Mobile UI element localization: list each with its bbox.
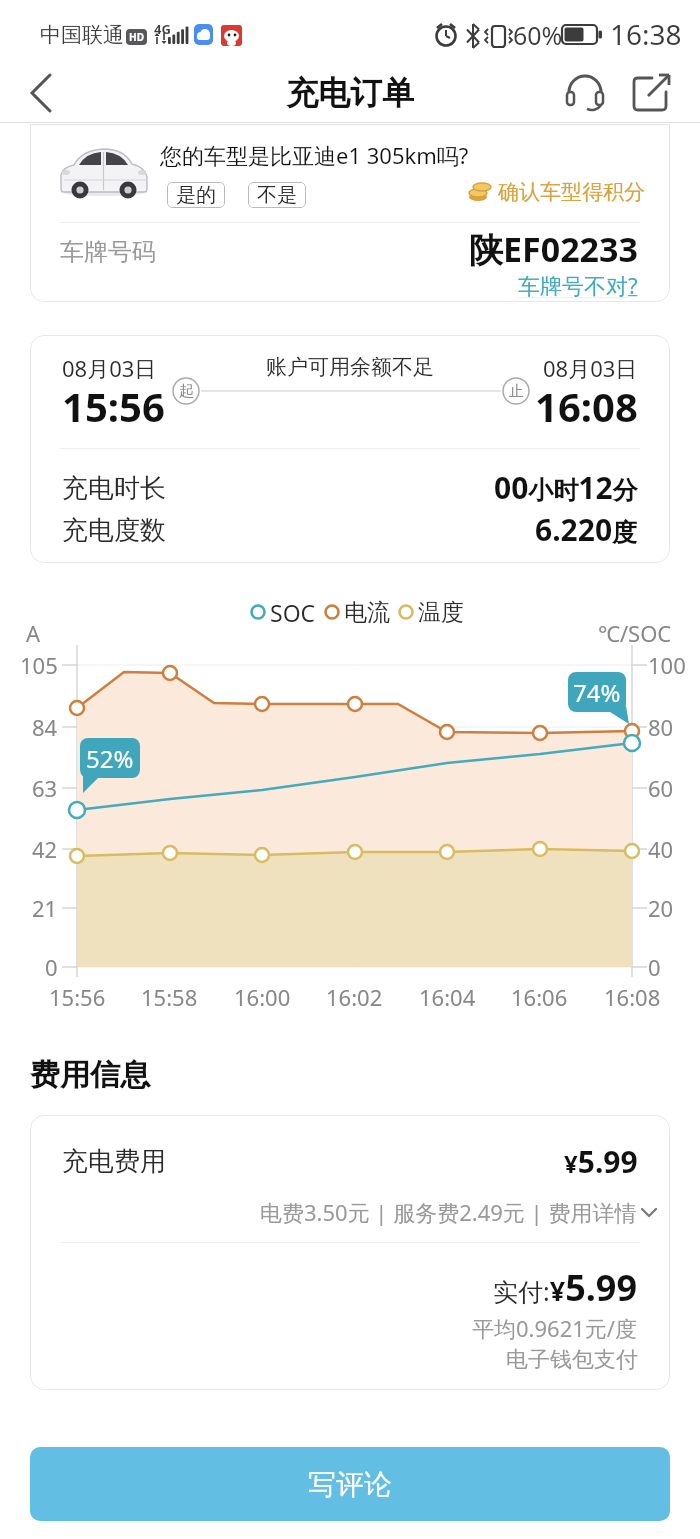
staticText: 车牌号不对? [518, 270, 638, 298]
staticText: 止 [509, 382, 524, 401]
staticText: 账户可用余额不足 [266, 354, 434, 380]
staticText: 105 [20, 650, 58, 680]
staticText: 写评论 [308, 1467, 392, 1502]
staticText: 20 [648, 893, 674, 923]
staticText: SOC [270, 597, 316, 628]
staticText: 车牌号码 [60, 237, 156, 267]
staticText: 平均0.9621元/度 [472, 1313, 638, 1343]
staticText: 74% [573, 676, 621, 708]
button[interactable] [628, 70, 678, 116]
button[interactable] [562, 70, 612, 116]
button[interactable]: 是的 [167, 182, 225, 208]
staticText: 15:56 [49, 982, 106, 1012]
staticText: 充电度数 [62, 514, 166, 547]
staticText: 60% [513, 18, 563, 52]
staticText: 16:06 [511, 982, 568, 1012]
staticText: 16:08 [604, 982, 661, 1012]
staticText: 6.220度 [535, 509, 638, 549]
staticText: 确认车型得积分 [498, 179, 645, 205]
staticText: 陕EF02233 [469, 226, 638, 272]
button[interactable]: 电费3.50元 | 服务费2.49元 | 费用详情 [260, 1195, 640, 1229]
button[interactable] [467, 175, 652, 209]
staticText: 16:38 [610, 15, 682, 53]
staticText: ¥5.99 [564, 1141, 638, 1181]
staticText: 42 [32, 834, 58, 864]
staticText: 52% [86, 742, 134, 774]
staticText: 费用信息 [30, 1056, 150, 1094]
staticText: 充电订单 [286, 73, 414, 113]
button[interactable]: 车牌号不对? [430, 270, 638, 298]
staticText: 21 [32, 893, 58, 923]
staticText: 是的 [176, 183, 216, 208]
staticText: 电子钱包支付 [506, 1346, 638, 1374]
staticText: HD [129, 30, 144, 44]
button[interactable]: 写评论 [30, 1447, 670, 1521]
staticText: 充电费用 [62, 1145, 166, 1178]
staticText: 08月03日 [543, 353, 638, 381]
staticText: 起 [179, 382, 194, 401]
button[interactable] [16, 68, 72, 118]
staticText: 80 [648, 712, 674, 742]
staticText: 15:58 [141, 982, 198, 1012]
staticText: 0 [648, 952, 661, 982]
staticText: 08月03日 [62, 353, 157, 381]
staticText: 4G [154, 20, 171, 38]
staticText: 实付:¥5.99 [493, 1263, 638, 1311]
staticText: ℃/SOC [598, 618, 672, 648]
button[interactable]: 不是 [248, 182, 306, 208]
staticText: 不是 [257, 183, 297, 208]
staticText: 温度 [418, 598, 464, 627]
staticText: 0 [45, 952, 58, 982]
staticText: A [26, 618, 41, 648]
staticText: 充电时长 [62, 472, 166, 505]
staticText: 40 [648, 834, 674, 864]
staticText: 16:08 [535, 379, 638, 429]
staticText: 60 [648, 773, 674, 803]
staticText: 中国联通 [40, 22, 124, 48]
staticText: 84 [32, 712, 58, 742]
staticText: 16:00 [234, 982, 291, 1012]
staticText: 电流 [344, 598, 390, 627]
staticText: 100 [648, 650, 686, 680]
staticText: 16:04 [419, 982, 476, 1012]
staticText: 您的车型是比亚迪e1 305km吗? [160, 140, 469, 170]
staticText: 电费3.50元 | 服务费2.49元 | 费用详情 [260, 1197, 637, 1227]
staticText: 63 [32, 773, 58, 803]
staticText: 00小时12分 [494, 467, 638, 507]
staticText: 16:02 [326, 982, 383, 1012]
staticText: 15:56 [62, 379, 165, 429]
